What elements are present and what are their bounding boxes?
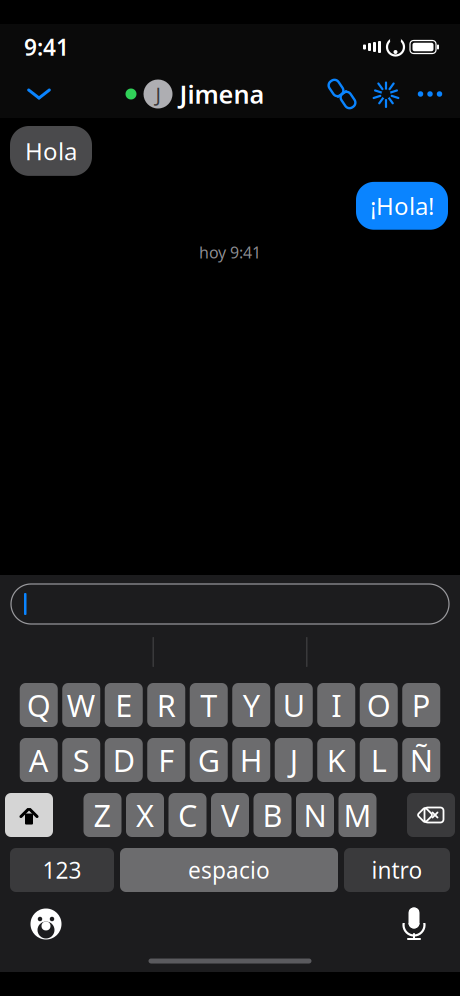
- button[interactable]: Message text field: [0, 584, 460, 624]
- staticText: Z: [93, 795, 111, 835]
- staticText: U: [283, 685, 305, 725]
- staticText: I: [331, 685, 341, 725]
- button[interactable]: Dictation: [392, 902, 436, 946]
- button[interactable]: L: [360, 738, 398, 782]
- button[interactable]: K: [317, 738, 355, 782]
- staticText: espacio: [188, 855, 270, 885]
- button[interactable]: Favorite: [368, 72, 404, 116]
- staticText: J: [290, 740, 298, 780]
- staticText: hoy 9:41: [199, 242, 261, 263]
- staticText: M: [343, 795, 371, 835]
- button[interactable]: N: [296, 793, 334, 837]
- staticText: Ñ: [410, 740, 433, 780]
- staticText: S: [73, 740, 90, 780]
- staticText: Q: [27, 685, 51, 725]
- staticText: O: [367, 685, 391, 725]
- button[interactable]: M: [338, 793, 376, 837]
- staticText: B: [262, 795, 282, 835]
- staticText: intro: [371, 855, 422, 885]
- staticText: H: [240, 740, 263, 780]
- button[interactable]: C: [168, 793, 206, 837]
- button[interactable]: D: [105, 738, 143, 782]
- staticText: 123: [42, 855, 81, 885]
- button[interactable]: Z: [83, 793, 121, 837]
- staticText: N: [303, 795, 326, 835]
- button[interactable]: F: [147, 738, 185, 782]
- button[interactable]: espacio: [120, 848, 338, 892]
- button[interactable]: intro: [344, 848, 450, 892]
- button[interactable]: U: [275, 683, 313, 727]
- staticText: W: [67, 685, 96, 725]
- button[interactable]: O: [360, 683, 398, 727]
- button[interactable]: Y: [232, 683, 270, 727]
- staticText: 9:41: [24, 32, 69, 62]
- button[interactable]: Call: [324, 72, 360, 116]
- button[interactable]: H: [232, 738, 270, 782]
- staticText: R: [157, 685, 176, 725]
- button[interactable]: Close conversation: [12, 72, 66, 116]
- staticText: P: [412, 685, 431, 725]
- staticText: Hola: [25, 135, 77, 167]
- button[interactable]: Delete: [407, 793, 455, 837]
- button[interactable]: P: [402, 683, 440, 727]
- button[interactable]: E: [105, 683, 143, 727]
- button[interactable]: Q: [20, 683, 58, 727]
- button[interactable]: T: [190, 683, 228, 727]
- staticText: Jimena: [179, 77, 264, 111]
- button[interactable]: A: [20, 738, 58, 782]
- staticText: C: [178, 795, 197, 835]
- staticText: D: [113, 740, 135, 780]
- button[interactable]: More options: [412, 72, 448, 116]
- button[interactable]: Shift: [5, 793, 53, 837]
- button[interactable]: B: [253, 793, 291, 837]
- staticText: A: [29, 740, 49, 780]
- button[interactable]: I: [317, 683, 355, 727]
- staticText: Y: [243, 685, 260, 725]
- button[interactable]: W: [62, 683, 100, 727]
- button[interactable]: X: [126, 793, 164, 837]
- staticText: F: [158, 740, 174, 780]
- button[interactable]: S: [62, 738, 100, 782]
- staticText: ¡Hola!: [370, 190, 434, 222]
- button[interactable]: Ñ: [402, 738, 440, 782]
- staticText: J: [155, 81, 160, 107]
- staticText: E: [115, 685, 132, 725]
- button[interactable]: Emoji keyboard: [24, 902, 68, 946]
- button[interactable]: R: [147, 683, 185, 727]
- staticText: G: [198, 740, 220, 780]
- button[interactable]: 123: [10, 848, 114, 892]
- staticText: L: [371, 740, 387, 780]
- staticText: V: [221, 795, 239, 835]
- button[interactable]: J: [275, 738, 313, 782]
- staticText: X: [136, 795, 154, 835]
- button[interactable]: V: [211, 793, 249, 837]
- staticText: K: [327, 740, 346, 780]
- button[interactable]: G: [190, 738, 228, 782]
- staticText: T: [200, 685, 217, 725]
